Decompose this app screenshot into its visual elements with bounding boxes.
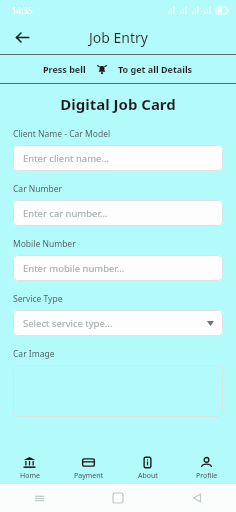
button[interactable]: Payment xyxy=(59,452,118,484)
staticText: Payment xyxy=(74,471,104,481)
button[interactable]: Press bell xyxy=(0,55,236,83)
button[interactable]: Enter mobile number... xyxy=(13,255,223,281)
staticText: About xyxy=(138,471,158,481)
button[interactable] xyxy=(13,365,223,417)
staticText: Press bell xyxy=(43,63,86,75)
button[interactable]: Enter client name... xyxy=(13,145,223,171)
staticText: Digital Job Card xyxy=(0,94,236,114)
staticText: Job Entry xyxy=(89,28,148,47)
button[interactable]: Home xyxy=(0,452,59,484)
staticText: Profile xyxy=(196,471,218,481)
staticText: Mobile Number xyxy=(13,238,76,250)
staticText: Client Name - Car Model xyxy=(13,128,111,140)
staticText: Enter car number... xyxy=(23,207,108,220)
button[interactable]: Enter car number... xyxy=(13,200,223,226)
staticText: Car Number xyxy=(13,183,63,195)
button[interactable]: About xyxy=(118,452,177,484)
staticText: Enter mobile number... xyxy=(23,262,125,275)
staticText: 14:35 xyxy=(12,5,33,16)
button[interactable]: Profile xyxy=(177,452,236,484)
staticText: Enter client name... xyxy=(23,152,110,165)
staticText: Service Type xyxy=(13,293,63,305)
button[interactable]: Back xyxy=(8,23,36,51)
staticText: Select service type... xyxy=(23,317,113,330)
staticText: Home xyxy=(20,471,40,481)
staticText: To get all Details xyxy=(118,63,193,75)
staticText: Car Image xyxy=(13,348,55,360)
button[interactable]: Select service type... xyxy=(13,310,223,336)
